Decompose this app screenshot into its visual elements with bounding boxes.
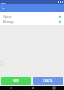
button[interactable]: SAVE — [1, 77, 31, 85]
button[interactable]: Back — [0, 86, 22, 90]
staticText: To — [2, 6, 5, 9]
button[interactable]: Option — [3, 14, 61, 19]
button[interactable]: Home — [22, 86, 43, 90]
button[interactable]: Message — [3, 19, 61, 24]
button[interactable]: Recent apps — [43, 86, 64, 90]
staticText: Option — [3, 15, 12, 19]
staticText: SAVE — [13, 79, 19, 83]
button[interactable]: CANCEL — [33, 77, 63, 85]
staticText: Message — [3, 20, 14, 24]
staticText: 9:41 — [1, 1, 6, 4]
staticText: CANCEL — [43, 79, 53, 83]
